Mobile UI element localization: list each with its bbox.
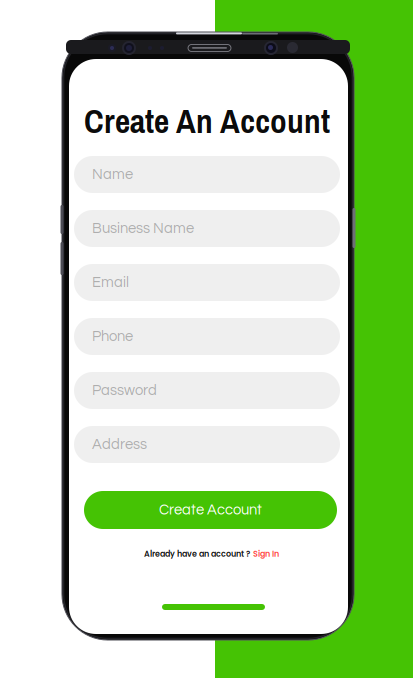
staticText: Business Name — [92, 221, 194, 236]
staticText: Create Account — [159, 502, 262, 517]
staticText: Email — [92, 275, 129, 290]
button[interactable]: Phone — [74, 318, 340, 355]
staticText: Name — [92, 167, 133, 182]
button[interactable]: Email — [74, 264, 340, 301]
staticText: Phone — [92, 329, 133, 344]
staticText: Address — [92, 437, 147, 452]
button[interactable]: Password — [74, 372, 340, 409]
button[interactable]: Create Account — [84, 491, 337, 529]
button[interactable]: Name — [74, 156, 340, 193]
button[interactable]: Business Name — [74, 210, 340, 247]
staticText: Password — [92, 383, 157, 398]
button[interactable]: Already have an account ? — [85, 547, 338, 561]
button[interactable]: Address — [74, 426, 340, 463]
staticText: Sign In — [253, 548, 279, 560]
staticText: Already have an account ? — [144, 548, 250, 560]
staticText: Create An Account — [84, 99, 330, 143]
